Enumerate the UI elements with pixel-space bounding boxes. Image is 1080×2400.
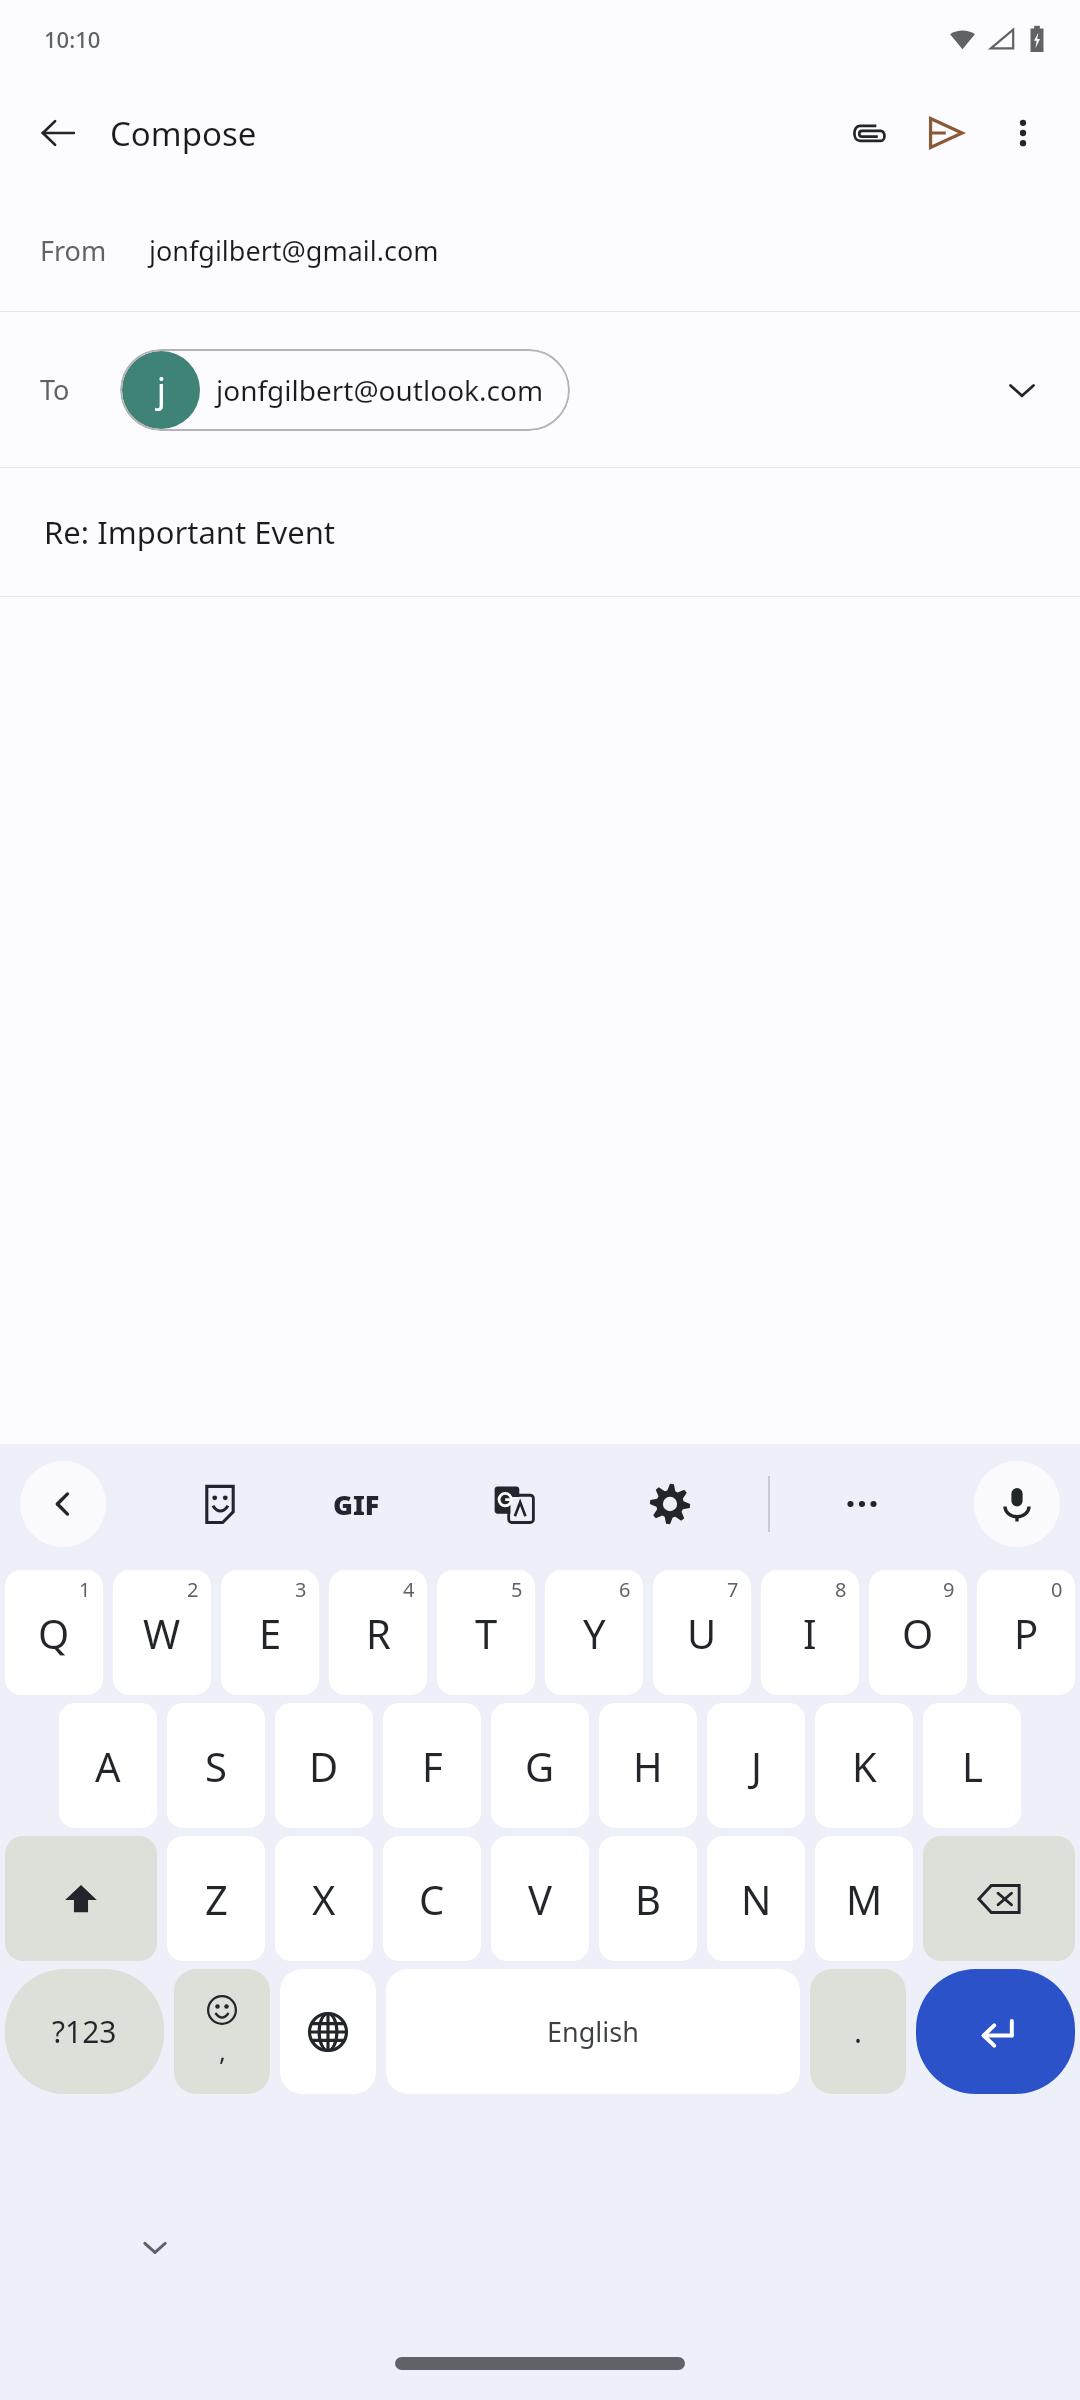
button[interactable]: Hide keyboard xyxy=(120,2212,190,2282)
staticText: R xyxy=(366,1606,391,1660)
staticText: G xyxy=(525,1739,555,1793)
staticText: 4 xyxy=(403,1576,415,1603)
staticText: 8 xyxy=(835,1576,847,1603)
button[interactable]: K xyxy=(815,1703,913,1828)
staticText: C xyxy=(419,1872,445,1926)
button[interactable]: E xyxy=(221,1570,319,1695)
staticText: GIF xyxy=(333,1486,380,1523)
button[interactable]: Back xyxy=(20,1461,106,1547)
button[interactable]: N xyxy=(707,1836,805,1961)
staticText: English xyxy=(547,2013,639,2050)
staticText: , xyxy=(219,2033,226,2068)
button[interactable]: P xyxy=(977,1570,1075,1695)
staticText: 5 xyxy=(511,1576,523,1603)
button[interactable]: O xyxy=(869,1570,967,1695)
staticText: V xyxy=(528,1872,552,1926)
button[interactable]: Translate xyxy=(472,1462,556,1546)
button[interactable]: C xyxy=(383,1836,481,1961)
staticText: Y xyxy=(583,1606,606,1660)
staticText: To xyxy=(40,371,70,408)
button[interactable]: GIF xyxy=(314,1462,398,1546)
staticText: 3 xyxy=(295,1576,307,1603)
staticText: j xyxy=(157,367,166,413)
staticText: 9 xyxy=(943,1576,955,1603)
staticText: Q xyxy=(38,1606,70,1660)
button[interactable]: R xyxy=(329,1570,427,1695)
staticText: U xyxy=(687,1606,717,1660)
staticText: H xyxy=(633,1739,663,1793)
staticText: 10:10 xyxy=(44,24,101,54)
button[interactable]: Back xyxy=(22,97,94,169)
staticText: A xyxy=(95,1739,121,1793)
staticText: 7 xyxy=(727,1576,739,1603)
button[interactable]: S xyxy=(167,1703,265,1828)
staticText: Compose xyxy=(110,111,257,156)
button[interactable]: F xyxy=(383,1703,481,1828)
staticText: D xyxy=(309,1739,339,1793)
button[interactable]: . xyxy=(810,1969,906,2094)
button[interactable]: Voice input xyxy=(974,1461,1060,1547)
button[interactable]: From xyxy=(0,189,1080,311)
button[interactable]: W xyxy=(113,1570,211,1695)
button[interactable]: j xyxy=(120,349,570,431)
staticText: M xyxy=(846,1872,883,1926)
staticText: X xyxy=(312,1872,336,1926)
button[interactable]: A xyxy=(59,1703,157,1828)
button[interactable]: D xyxy=(275,1703,373,1828)
staticText: E xyxy=(259,1606,282,1660)
staticText: From xyxy=(40,232,107,269)
button[interactable]: V xyxy=(491,1836,589,1961)
staticText: . xyxy=(854,2011,863,2052)
staticText: ?123 xyxy=(52,2011,117,2052)
button[interactable]: G xyxy=(491,1703,589,1828)
button[interactable]: Stickers xyxy=(178,1462,262,1546)
staticText: L xyxy=(962,1739,983,1793)
button[interactable]: Settings xyxy=(628,1462,712,1546)
button[interactable]: Q xyxy=(5,1570,103,1695)
staticText: 1 xyxy=(79,1576,91,1603)
button[interactable]: H xyxy=(599,1703,697,1828)
staticText: K xyxy=(852,1739,877,1793)
button[interactable]: More xyxy=(820,1462,904,1546)
button[interactable]: Re: Important Event xyxy=(0,468,1080,596)
staticText: P xyxy=(1014,1606,1039,1660)
button[interactable]: J xyxy=(707,1703,805,1828)
staticText: 2 xyxy=(187,1576,199,1603)
button[interactable]: Emoji xyxy=(174,1969,270,2094)
button[interactable]: Z xyxy=(167,1836,265,1961)
staticText: 0 xyxy=(1051,1576,1063,1603)
button[interactable]: M xyxy=(815,1836,913,1961)
staticText: 6 xyxy=(619,1576,631,1603)
staticText: N xyxy=(741,1872,772,1926)
button[interactable]: U xyxy=(653,1570,751,1695)
staticText: W xyxy=(143,1606,181,1660)
staticText: I xyxy=(803,1606,817,1660)
button[interactable]: Expand recipients xyxy=(984,352,1060,428)
staticText: F xyxy=(422,1739,443,1793)
staticText: B xyxy=(635,1872,661,1926)
staticText: J xyxy=(751,1739,762,1793)
button[interactable]: Y xyxy=(545,1570,643,1695)
staticText: O xyxy=(902,1606,934,1660)
button[interactable]: Send xyxy=(906,94,984,172)
button[interactable]: X xyxy=(275,1836,373,1961)
button[interactable]: More options xyxy=(984,94,1062,172)
button[interactable]: ?123 xyxy=(5,1969,164,2094)
staticText: S xyxy=(205,1739,227,1793)
button[interactable]: Change language xyxy=(280,1969,376,2094)
button[interactable]: I xyxy=(761,1570,859,1695)
button[interactable]: Backspace xyxy=(923,1836,1075,1961)
staticText: jonfgilbert@gmail.com xyxy=(149,232,439,269)
button[interactable]: Enter xyxy=(916,1969,1075,2094)
button[interactable]: Shift xyxy=(5,1836,157,1961)
staticText: Z xyxy=(205,1872,228,1926)
staticText: T xyxy=(475,1606,498,1660)
button[interactable]: Attach file xyxy=(828,94,906,172)
staticText: jonfgilbert@outlook.com xyxy=(216,371,544,409)
staticText: Re: Important Event xyxy=(44,511,336,553)
button[interactable]: English xyxy=(386,1969,800,2094)
button[interactable]: T xyxy=(437,1570,535,1695)
button[interactable]: B xyxy=(599,1836,697,1961)
button[interactable]: L xyxy=(923,1703,1021,1828)
